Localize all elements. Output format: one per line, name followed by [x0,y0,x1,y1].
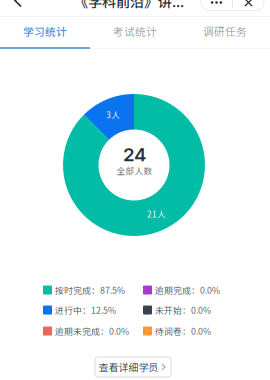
staticText: 逾期未完成：0.0% [55,325,129,337]
button[interactable]: 调研任务 [180,17,270,45]
staticText: 《学科前沿》讲... [74,0,184,11]
button[interactable]: 查看详细学员 [95,357,171,377]
staticText: 进行中：12.5% [55,304,116,316]
staticText: 21人 [147,208,165,220]
staticText: 学习统计 [23,23,67,39]
button[interactable]: 考试统计 [90,17,180,45]
button[interactable]: 学习统计 [0,17,90,45]
staticText: 逾期完成：0.0% [155,284,220,296]
staticText: 按时完成：87.5% [55,284,125,296]
button[interactable]: Back [5,0,31,14]
button[interactable]: Close [233,0,264,10]
staticText: 调研任务 [203,23,247,39]
staticText: 查看详细学员 [98,360,158,374]
button[interactable]: More [201,0,232,10]
staticText: 全部人数 [116,164,152,177]
staticText: 考试统计 [113,23,157,39]
staticText: 未开始：0.0% [155,304,211,316]
staticText: 待阅卷：0.0% [155,325,211,337]
staticText: 24 [123,143,146,166]
staticText: 3人 [106,109,119,121]
